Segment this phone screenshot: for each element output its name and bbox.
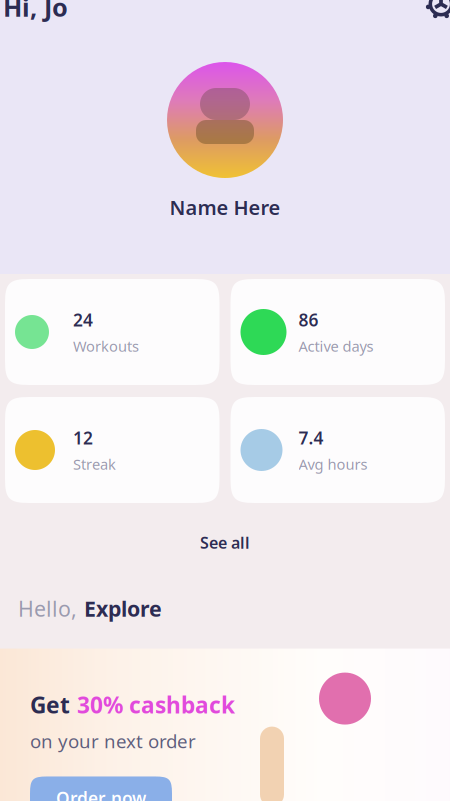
staticText: Streak xyxy=(73,454,116,474)
staticText: Hi, Jo xyxy=(3,0,68,24)
button[interactable]: 7.4 xyxy=(230,397,445,503)
staticText: Explore xyxy=(84,594,162,622)
button[interactable]: Settings xyxy=(424,0,450,21)
staticText: Workouts xyxy=(73,336,139,356)
staticText: Avg hours xyxy=(298,454,367,474)
staticText: 86 xyxy=(298,308,318,331)
staticText: 12 xyxy=(73,426,93,449)
staticText: Order now xyxy=(56,786,146,801)
staticText: Hello, xyxy=(18,594,77,622)
staticText: 7.4 xyxy=(298,426,323,449)
button[interactable]: 24 xyxy=(5,279,219,385)
staticText: See all xyxy=(200,532,250,553)
staticText: Name Here xyxy=(169,194,280,221)
button[interactable]: 12 xyxy=(5,397,219,503)
button[interactable]: See all xyxy=(190,525,260,560)
button[interactable]: Order now xyxy=(30,776,172,801)
staticText: 30% cashback xyxy=(77,690,235,720)
button[interactable]: Get xyxy=(0,649,450,801)
staticText: Active days xyxy=(298,336,373,356)
staticText: on your next order xyxy=(30,729,196,753)
button[interactable]: 86 xyxy=(230,279,445,385)
staticText: Get xyxy=(30,690,70,720)
staticText: 24 xyxy=(73,308,93,331)
